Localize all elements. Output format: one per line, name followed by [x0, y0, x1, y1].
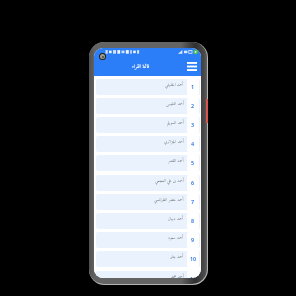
- staticText: 4: [191, 140, 195, 147]
- button[interactable]: أحمد السويلم: [96, 117, 200, 133]
- staticText: 11: [190, 275, 197, 278]
- button[interactable]: Menu: [185, 59, 198, 73]
- button[interactable]: أحمد القصر: [96, 155, 200, 171]
- button[interactable]: أحمد الحذيفي: [96, 79, 200, 95]
- staticText: 3: [191, 121, 195, 128]
- staticText: قائمة القراء: [132, 62, 150, 71]
- staticText: 9: [191, 236, 195, 243]
- staticText: أحمد القصر: [168, 157, 184, 165]
- staticText: 5: [191, 159, 195, 166]
- staticText: أحمد جابر: [170, 253, 184, 261]
- button[interactable]: أحمد ديبان: [96, 213, 200, 229]
- staticText: أحمد محمد: [171, 273, 184, 278]
- staticText: أحمد بن علي العجمي: [155, 177, 184, 185]
- button[interactable]: أحمد سعود: [96, 232, 200, 248]
- button[interactable]: أحمد بن علي العجمي: [96, 175, 200, 191]
- staticText: أحمد الجزائري: [164, 138, 184, 146]
- staticText: أحمد السويلم: [167, 119, 184, 127]
- button[interactable]: أحمد الجزائري: [96, 136, 200, 152]
- button[interactable]: أحمد محمد: [96, 271, 200, 278]
- button[interactable]: أحمد خضر الطرابلسي: [96, 194, 200, 210]
- staticText: 7: [191, 198, 195, 205]
- staticText: أحمد خضر الطرابلسي: [154, 196, 184, 204]
- staticText: أحمد سعود: [168, 234, 184, 242]
- staticText: 2: [191, 102, 195, 109]
- button[interactable]: أحمد جابر: [96, 251, 200, 267]
- staticText: 6: [191, 179, 195, 186]
- button[interactable]: أحمد النفيس: [96, 98, 200, 114]
- staticText: أحمد الحذيفي: [165, 81, 184, 89]
- staticText: أحمد النفيس: [166, 100, 184, 108]
- staticText: 10: [190, 255, 197, 262]
- staticText: 8: [191, 217, 195, 224]
- staticText: 1: [191, 83, 195, 90]
- staticText: أحمد ديبان: [168, 215, 184, 223]
